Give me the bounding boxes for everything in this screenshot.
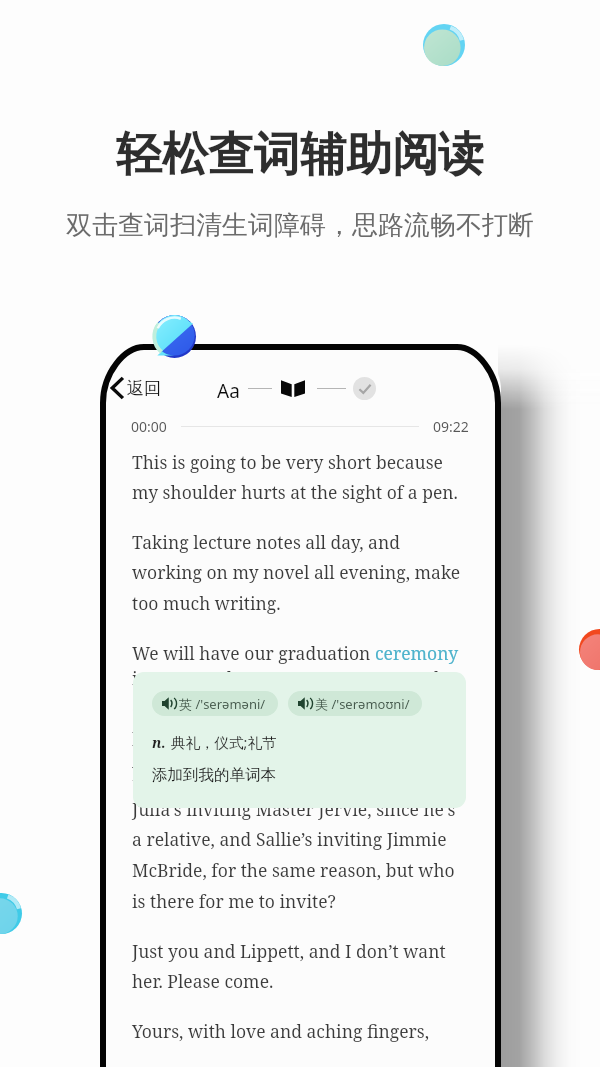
- staticText: 轻松查词辅助阅读: [0, 126, 600, 184]
- staticText: This is going to be very short because m…: [132, 450, 462, 504]
- staticText: ceremony: [375, 641, 459, 665]
- button[interactable]: Book mode: [281, 380, 305, 397]
- button[interactable]: 美 /'serəmoʊni/: [288, 691, 422, 716]
- button[interactable]: 返回: [107, 374, 164, 402]
- staticText: 英 /'serəməni/: [179, 695, 266, 713]
- staticText: Just you and Lippett, and I don’t want h…: [132, 939, 462, 993]
- button[interactable]: 英 /'serəməni/: [152, 691, 278, 716]
- staticText: in June, and I want you to come. Each of…: [132, 666, 462, 782]
- button[interactable]: 添加到我的单词本: [152, 765, 276, 785]
- staticText: Yours, with love and aching fingers,: [132, 1019, 430, 1043]
- staticText: 09:22: [433, 417, 469, 436]
- staticText: 返回: [127, 378, 161, 399]
- staticText: 双击查词扫清生词障碍，思路流畅不打断: [0, 209, 600, 242]
- staticText: 00:00: [131, 417, 167, 436]
- button[interactable]: Aa: [215, 376, 242, 406]
- staticText: We will have our graduation: [132, 641, 375, 665]
- staticText: 典礼，仪式;礼节: [171, 732, 277, 752]
- staticText: 美 /'serəmoʊni/: [315, 695, 410, 713]
- button[interactable]: Finish reading: [353, 377, 376, 400]
- staticText: n.: [152, 733, 166, 752]
- staticText: Taking lecture notes all day, and workin…: [132, 530, 462, 615]
- staticText: Julia’s inviting Master Jervie, since he…: [132, 797, 462, 913]
